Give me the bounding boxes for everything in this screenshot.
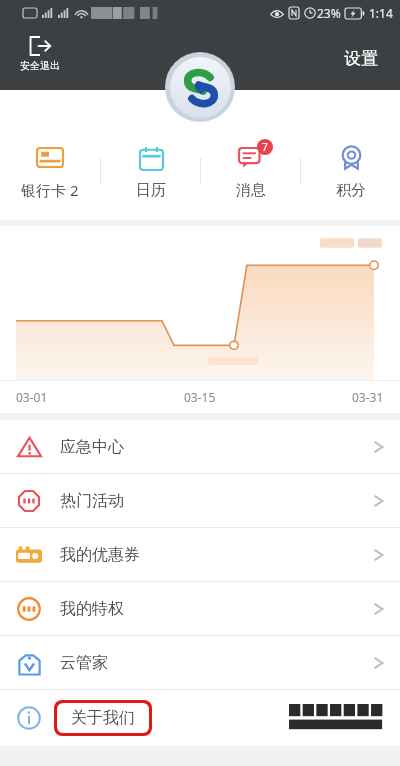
staticText: 消息 [236, 181, 266, 200]
button[interactable]: 我的优惠券 [0, 528, 400, 581]
button[interactable]: 设置 [328, 40, 394, 77]
staticText: 银行卡 2 [21, 180, 79, 200]
staticText: 应急中心 [60, 437, 124, 457]
staticText: 03-31 [352, 389, 384, 405]
other: Logo [165, 52, 235, 122]
staticText: 安全退出 [20, 59, 60, 72]
staticText: 我的优惠券 [60, 545, 140, 565]
other: Open [373, 438, 384, 456]
staticText: 23% [317, 5, 341, 21]
button[interactable]: 我的特权 [0, 582, 400, 635]
staticText: 1:14 [369, 5, 393, 21]
other: Open [373, 654, 384, 672]
button[interactable]: 热门活动 [0, 474, 400, 527]
button[interactable]: 日历 [101, 138, 200, 204]
button[interactable]: 7 [201, 138, 300, 204]
staticText: 我的特权 [60, 599, 124, 619]
staticText: 积分 [336, 181, 366, 200]
staticText: 03-01 [16, 389, 48, 405]
staticText: 7 [262, 140, 268, 154]
other: Open [373, 546, 384, 564]
staticText: 03-15 [184, 389, 216, 405]
button[interactable]: 银行卡 2 [0, 137, 100, 204]
button[interactable]: 关于我们 [0, 690, 400, 746]
staticText: 关于我们 [71, 708, 135, 728]
staticText: 日历 [136, 181, 166, 200]
staticText: 云管家 [60, 653, 108, 673]
other: Open [373, 492, 384, 510]
staticText: 热门活动 [60, 491, 124, 511]
button[interactable]: 积分 [301, 138, 400, 204]
other: Open [373, 600, 384, 618]
button[interactable]: 安全退出 [12, 32, 68, 76]
button[interactable]: 云管家 [0, 636, 400, 689]
button[interactable]: 应急中心 [0, 420, 400, 473]
